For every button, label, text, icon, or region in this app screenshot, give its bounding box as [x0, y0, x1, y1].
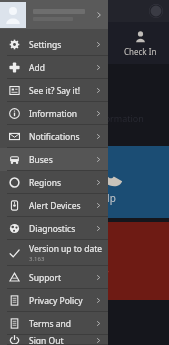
button[interactable]: Version up to date [0, 240, 108, 266]
button[interactable]: Information [0, 102, 108, 125]
staticText: Settings [29, 39, 62, 51]
button[interactable]: Add Organisation [0, 56, 108, 79]
staticText: Sign Out [29, 335, 64, 345]
staticText: Information [29, 108, 78, 120]
button[interactable]: Settings [0, 33, 108, 56]
staticText: Diagnostics [29, 223, 76, 235]
staticText: Add Organisation [29, 62, 94, 74]
button[interactable]: Regions [0, 171, 108, 194]
staticText: Buses [29, 154, 53, 166]
staticText: nformation [96, 112, 144, 124]
button[interactable]: Diagnostics [0, 217, 108, 240]
button[interactable]: Terms and Conditions [0, 312, 108, 335]
button[interactable]: Privacy Policy [0, 289, 108, 312]
button[interactable]: Check In [0, 22, 169, 64]
staticText: See it? Say it! [29, 85, 81, 97]
staticText: Notifications [29, 131, 80, 143]
button[interactable]: Help [0, 146, 169, 218]
button[interactable]: Support [0, 266, 108, 289]
button[interactable]: Buses [0, 148, 108, 171]
staticText: Privacy Policy [29, 295, 83, 307]
button[interactable]: ey [0, 222, 169, 300]
button[interactable]: Sign Out [0, 335, 108, 345]
button[interactable]: See it? Say it! [0, 79, 108, 102]
staticText: Regions [29, 177, 61, 189]
button[interactable]: Profile [149, 4, 163, 18]
button[interactable] [0, 0, 108, 29]
staticText: Support [29, 272, 62, 284]
staticText: ey [96, 265, 109, 281]
staticText: Version up to date [29, 243, 103, 255]
staticText: Alert Devices [29, 200, 81, 212]
staticText: Check In [124, 46, 157, 57]
staticText: 3.163 [29, 255, 45, 263]
staticText: Help [94, 191, 116, 205]
button[interactable]: Notifications [0, 125, 108, 148]
button[interactable]: Alert Devices [0, 194, 108, 217]
staticText: Terms and Conditions [29, 318, 94, 330]
